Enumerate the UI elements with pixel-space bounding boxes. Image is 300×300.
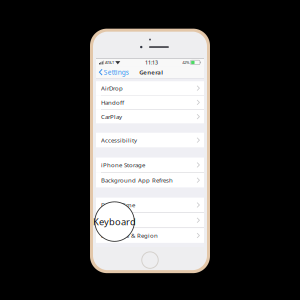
staticText: Accessibility (101, 136, 137, 144)
button[interactable]: Language & Region (96, 228, 204, 243)
button[interactable]: CarPlay (96, 110, 204, 124)
staticText: iPhone Storage (101, 161, 145, 169)
staticText: 11:13 (145, 59, 158, 66)
staticText: AirDrop (101, 84, 123, 92)
button[interactable]: Accessibility (96, 133, 204, 148)
staticText: Date & Time (101, 201, 135, 209)
button[interactable]: Date & Time (96, 198, 204, 212)
button[interactable]: Settings (96, 66, 131, 78)
staticText: General (139, 68, 163, 76)
button[interactable]: Background App Refresh (96, 173, 204, 188)
button[interactable]: iPhone Storage (96, 158, 204, 172)
staticText: Keyboard (93, 215, 136, 228)
staticText: Handoff (101, 98, 124, 106)
staticText: Language & Region (101, 231, 158, 240)
staticText: CarPlay (101, 113, 122, 121)
staticText: AT&T (104, 60, 115, 65)
button[interactable]: Handoff (96, 95, 204, 109)
staticText: 42% (182, 60, 189, 65)
staticText: Settings (104, 68, 129, 77)
button[interactable]: Keyboard (96, 213, 204, 228)
staticText: Keyboard (101, 216, 128, 224)
button[interactable]: AirDrop (96, 81, 204, 95)
staticText: Background App Refresh (101, 176, 173, 184)
